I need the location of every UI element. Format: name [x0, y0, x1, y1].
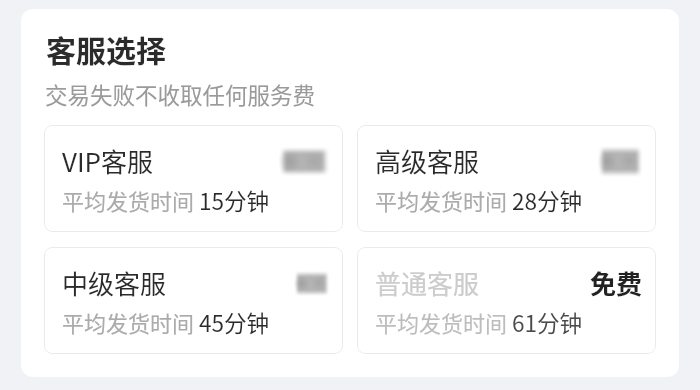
- staticText: 平均发货时间 15分钟: [62, 184, 270, 217]
- staticText: 客服选择: [46, 27, 166, 70]
- staticText: 交易失败不收取任何服务费: [45, 78, 316, 111]
- staticText: 平均发货时间 28分钟: [375, 184, 583, 217]
- staticText: 普通客服: [375, 264, 480, 302]
- other: Price hidden: [294, 270, 330, 297]
- other: Price hidden: [279, 146, 330, 177]
- staticText: 高级客服: [375, 142, 480, 180]
- button[interactable]: 中级客服: [44, 247, 343, 354]
- staticText: 平均发货时间 61分钟: [375, 306, 583, 339]
- button[interactable]: 高级客服: [357, 125, 656, 232]
- staticText: VIP客服: [62, 142, 154, 180]
- staticText: 中级客服: [62, 264, 167, 302]
- button[interactable]: 普通客服: [357, 247, 656, 354]
- staticText: 免费: [590, 264, 643, 302]
- staticText: 平均发货时间 45分钟: [62, 306, 270, 339]
- other: Price hidden: [598, 145, 643, 178]
- button[interactable]: VIP客服: [44, 125, 343, 232]
